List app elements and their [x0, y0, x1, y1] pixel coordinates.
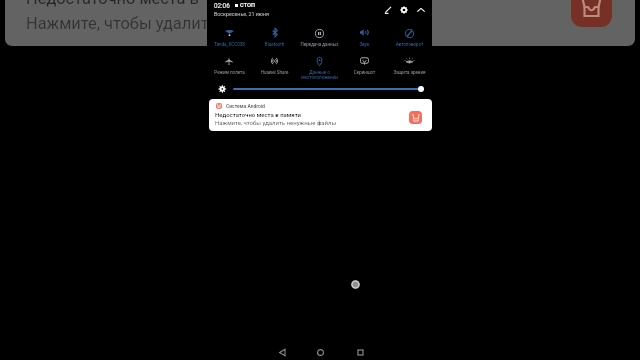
- button[interactable]: Recent apps: [349, 341, 371, 360]
- staticText: Нажмите, чтобы удалит: [26, 14, 209, 33]
- staticText: стоп: [240, 1, 255, 9]
- button[interactable]: Защита зрения: [387, 54, 432, 74]
- button[interactable]: Автоповорот: [387, 26, 432, 46]
- staticText: Звук: [342, 42, 387, 47]
- staticText: Данные о местоположении: [297, 70, 342, 80]
- button[interactable]: Collapse quick settings: [414, 3, 428, 17]
- staticText: Скриншот: [342, 70, 387, 75]
- staticText: Режим полета: [207, 70, 252, 75]
- button[interactable]: Back: [271, 341, 293, 360]
- staticText: Воскресенье, 21 июня: [214, 11, 270, 17]
- button[interactable]: Скриншот: [342, 54, 387, 74]
- staticText: Bluetooth: [252, 42, 297, 47]
- staticText: Недостаточно места в памяти: [215, 111, 302, 118]
- button[interactable]: Передача данных: [297, 26, 342, 46]
- button[interactable]: Edit quick settings: [381, 3, 395, 17]
- button[interactable]: Brightness: [207, 82, 432, 96]
- staticText: Автоповорот: [387, 42, 432, 47]
- staticText: Система Android: [226, 103, 265, 109]
- staticText: Tenda_XCC038: [207, 42, 252, 47]
- button[interactable]: Huawei Share: [252, 54, 297, 74]
- button[interactable]: Данные о местоположении: [297, 54, 342, 74]
- button[interactable]: Звук: [342, 26, 387, 46]
- button[interactable]: Tenda_XCC038: [207, 26, 252, 46]
- staticText: 02:06: [214, 2, 230, 9]
- button[interactable]: Settings: [397, 3, 411, 17]
- staticText: Недостаточно места в: [26, 0, 199, 8]
- staticText: Защита зрения: [387, 70, 432, 75]
- staticText: Нажмите, чтобы удалить ненужные файлы: [215, 119, 337, 126]
- button[interactable]: Режим полета: [207, 54, 252, 74]
- staticText: Передача данных: [297, 42, 342, 47]
- staticText: Huawei Share: [252, 70, 297, 75]
- button[interactable]: Недостаточно места в: [5, 0, 635, 46]
- button[interactable]: Home: [309, 341, 331, 360]
- button[interactable]: Bluetooth: [252, 26, 297, 46]
- button[interactable]: Система Android: [209, 99, 432, 131]
